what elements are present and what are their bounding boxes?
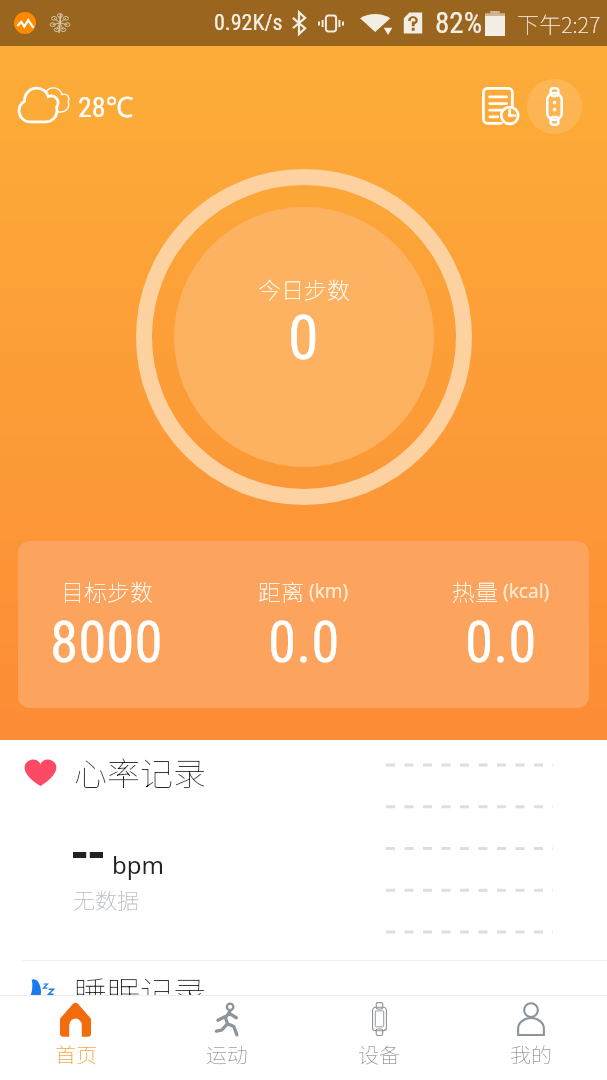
button[interactable]: 距离 xyxy=(205,541,402,708)
staticText: 无数据 xyxy=(73,883,140,915)
staticText: 距离 xyxy=(258,574,304,607)
staticText: 0 xyxy=(288,301,319,374)
button[interactable]: 我的 xyxy=(455,996,607,1080)
staticText: 8000 xyxy=(50,609,163,676)
staticText: 我的 xyxy=(510,1039,552,1069)
staticText: bpm xyxy=(112,848,164,881)
staticText: (km) xyxy=(309,578,349,604)
staticText: 设备 xyxy=(358,1039,400,1069)
button[interactable]: 心率记录 xyxy=(0,748,607,796)
staticText: 82% xyxy=(435,6,482,40)
staticText: 心率记录 xyxy=(74,748,206,796)
button[interactable]: History records xyxy=(475,81,525,131)
staticText: 睡眠记录 xyxy=(74,967,206,1015)
button[interactable]: 28℃ xyxy=(14,81,138,131)
button[interactable]: 睡眠记录 xyxy=(0,965,607,1017)
button[interactable]: My device xyxy=(527,79,582,134)
staticText: 下午2:27 xyxy=(517,7,601,39)
button[interactable]: 设备 xyxy=(303,996,455,1080)
staticText: 运动 xyxy=(206,1039,248,1069)
staticText: 28℃ xyxy=(78,87,134,125)
staticText: 热量 xyxy=(452,574,498,607)
button[interactable]: 热量 xyxy=(402,541,599,708)
button[interactable]: 首页 xyxy=(0,996,151,1080)
staticText: 0.0 xyxy=(465,609,537,676)
button[interactable]: 运动 xyxy=(151,996,303,1080)
staticText: 0.92K/s xyxy=(214,10,283,36)
staticText: 今日步数 xyxy=(258,272,350,305)
staticText: 0.0 xyxy=(268,609,340,676)
staticText: (kcal) xyxy=(503,578,550,604)
staticText: 目标步数 xyxy=(61,574,153,607)
button[interactable]: 目标步数 xyxy=(8,541,205,708)
staticText: 首页 xyxy=(55,1039,97,1069)
button[interactable]: Today steps xyxy=(136,169,472,505)
